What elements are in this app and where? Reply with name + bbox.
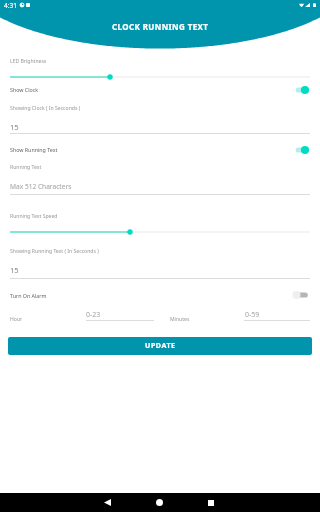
staticText: Minutes: [170, 316, 190, 323]
button[interactable]: Toggle on: [292, 83, 314, 97]
button[interactable]: [10, 228, 310, 236]
staticText: Turn On Alarm: [10, 292, 47, 299]
staticText: Show Clock: [10, 86, 39, 93]
staticText: Showing Running Text ( In Secconds ): [10, 248, 99, 255]
staticText: 15: [10, 265, 19, 275]
button[interactable]: Back: [93, 494, 122, 511]
staticText: Running Text Speed: [10, 213, 58, 220]
button[interactable]: Home: [145, 494, 174, 511]
button[interactable]: [10, 73, 310, 81]
staticText: LED Brightness: [10, 58, 47, 65]
staticText: Hour: [10, 316, 23, 323]
button[interactable]: UPDATE: [8, 337, 312, 355]
staticText: 4:31: [4, 1, 17, 10]
button[interactable]: Toggle off: [292, 288, 314, 302]
staticText: CLOCK RUNNING TEXT: [112, 21, 209, 32]
staticText: Showing Clock ( In Secconds ): [10, 105, 81, 112]
staticText: Max 512 Characters: [10, 182, 72, 191]
staticText: Show Running Text: [10, 146, 58, 153]
button[interactable]: Toggle on: [292, 143, 314, 157]
staticText: 0-23: [86, 310, 101, 320]
staticText: 15: [10, 122, 19, 132]
staticText: UPDATE: [145, 341, 176, 351]
staticText: Running Text: [10, 164, 42, 171]
staticText: 0-59: [245, 310, 260, 320]
button[interactable]: Recents: [196, 494, 225, 511]
